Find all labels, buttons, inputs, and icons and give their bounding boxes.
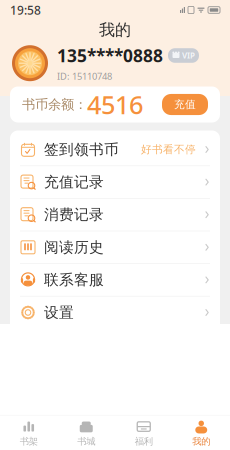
staticText: 阅读历史 xyxy=(44,238,104,256)
staticText: 好书看不停 xyxy=(141,143,196,156)
staticText: 签到领书币 xyxy=(44,140,119,158)
staticText: 消费记录 xyxy=(44,206,104,224)
staticText: 书城 xyxy=(77,436,95,447)
staticText: 充值 xyxy=(174,98,196,111)
button[interactable]: 消费记录 xyxy=(10,199,220,231)
staticText: 135****0888 xyxy=(57,44,163,67)
button[interactable]: 阅读历史 xyxy=(10,231,220,264)
staticText: 书架 xyxy=(20,436,38,447)
staticText: 福利 xyxy=(135,436,153,447)
staticText: 充值记录 xyxy=(44,173,104,191)
button[interactable]: 设置 xyxy=(10,296,220,328)
button[interactable]: 福利 xyxy=(115,416,172,450)
button[interactable]: 充值记录 xyxy=(10,166,220,199)
staticText: 4516 xyxy=(87,88,143,121)
button[interactable]: 充值 xyxy=(162,94,208,115)
staticText: 我的 xyxy=(192,436,210,447)
button[interactable]: 联系客服 xyxy=(10,264,220,296)
staticText: 我的 xyxy=(99,20,131,40)
button[interactable]: 书架 xyxy=(0,416,57,450)
staticText: 19:58 xyxy=(10,2,41,18)
staticText: ID: 15110748 xyxy=(57,70,112,82)
staticText: VIP xyxy=(182,50,195,61)
button[interactable]: 签到领书币 xyxy=(10,133,220,166)
button[interactable]: 书城 xyxy=(57,416,115,450)
button[interactable]: 我的 xyxy=(172,416,230,450)
staticText: 联系客服 xyxy=(44,271,104,289)
staticText: 设置 xyxy=(44,303,74,321)
staticText: 书币余额： xyxy=(22,96,87,113)
